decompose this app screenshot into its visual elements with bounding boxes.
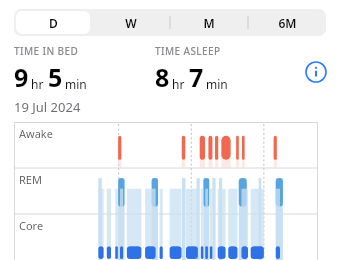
- staticText: hr: [172, 76, 185, 92]
- button[interactable]: Awake: [0, 122, 340, 260]
- button[interactable]: 6M: [250, 11, 324, 34]
- staticText: min: [206, 76, 228, 92]
- staticText: TIME ASLEEP: [155, 44, 221, 58]
- staticText: 19 Jul 2024: [14, 98, 81, 116]
- staticText: REM: [19, 172, 42, 187]
- staticText: TIME IN BED: [14, 44, 79, 58]
- button[interactable]: M: [172, 11, 246, 34]
- staticText: hr: [31, 76, 44, 92]
- staticText: min: [65, 76, 87, 92]
- staticText: 5: [48, 60, 63, 94]
- staticText: Core: [19, 218, 44, 233]
- button[interactable]: Info: [304, 60, 328, 84]
- staticText: 7: [189, 60, 204, 94]
- staticText: 6M: [278, 15, 297, 31]
- staticText: M: [203, 15, 215, 31]
- staticText: 8: [155, 60, 170, 94]
- button[interactable]: W: [94, 11, 168, 34]
- staticText: 9: [14, 60, 29, 94]
- staticText: D: [49, 15, 58, 31]
- staticText: W: [125, 15, 137, 31]
- button[interactable]: D: [16, 11, 90, 34]
- staticText: Awake: [19, 126, 53, 141]
